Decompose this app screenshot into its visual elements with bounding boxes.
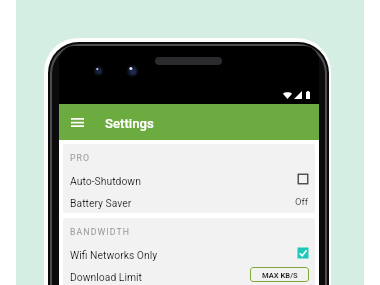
- staticText: Download Limit: [70, 271, 142, 283]
- staticText: MAX KB/S: [262, 271, 298, 280]
- staticText: PRO: [70, 153, 91, 163]
- staticText: Settings: [105, 116, 154, 131]
- button[interactable]: Open navigation drawer: [64, 109, 90, 135]
- button[interactable]: Battery Saver: [63, 190, 315, 211]
- button[interactable]: MAX KB/S: [250, 267, 309, 282]
- staticText: Auto-Shutdown: [70, 175, 141, 187]
- button[interactable]: Auto-Shutdown: [63, 168, 315, 190]
- button[interactable]: Unchecked: [297, 173, 309, 185]
- staticText: BANDWIDTH: [70, 227, 131, 237]
- button[interactable]: Wifi Networks Only: [63, 242, 315, 264]
- staticText: Battery Saver: [70, 197, 132, 209]
- staticText: Off: [295, 196, 309, 207]
- button[interactable]: Download Limit: [63, 264, 315, 285]
- button[interactable]: Checked: [297, 247, 309, 259]
- staticText: Wifi Networks Only: [70, 249, 158, 261]
